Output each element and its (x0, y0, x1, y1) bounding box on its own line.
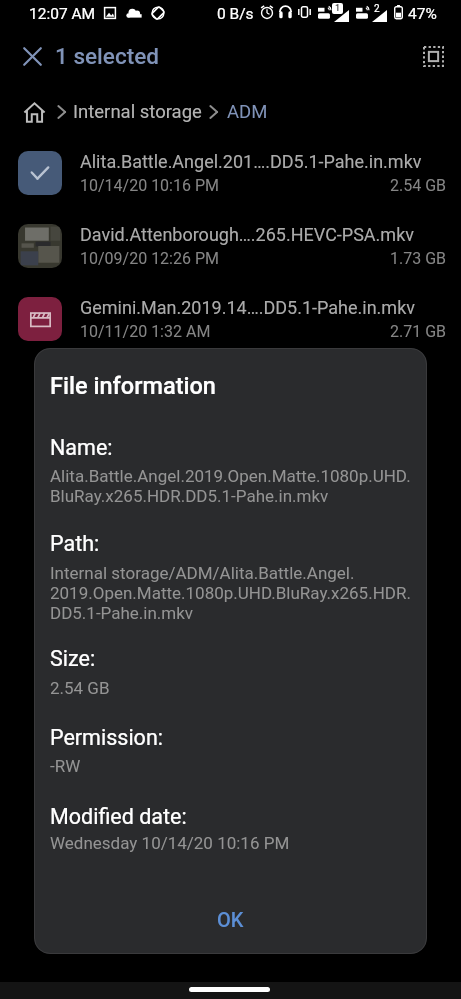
staticText: File information (50, 372, 216, 400)
staticText: Wednesday 10/14/20 10:16 PM (50, 833, 290, 853)
button[interactable]: Close (12, 36, 52, 76)
staticText: Alita.Battle.Angel.201….DD5.1-Pahe.in.mk… (80, 151, 422, 172)
staticText: 2.71 GB (390, 322, 447, 341)
staticText: Name: (50, 435, 113, 460)
staticText: Path: (50, 531, 100, 556)
staticText: 12:07 AM (29, 5, 96, 23)
staticText: 10/09/20 12:26 PM (80, 249, 219, 268)
staticText: 10/14/20 10:16 PM (80, 176, 219, 195)
staticText: Alita.Battle.Angel.2019.Open.Matte.1080p… (50, 466, 411, 506)
staticText: 1 (335, 3, 341, 14)
button[interactable]: Alita.Battle.Angel.201….DD5.1-Pahe.in.mk… (0, 136, 461, 209)
staticText: 1.73 GB (390, 249, 447, 268)
staticText: -RW (50, 756, 81, 776)
staticText: 2.54 GB (50, 678, 110, 698)
button[interactable]: Internal storage (73, 101, 202, 123)
staticText: Modified date: (50, 804, 187, 829)
staticText: Size: (50, 646, 96, 671)
button[interactable]: Gemini.Man.2019.14….DD5.1-Pahe.in.mkv (0, 282, 461, 355)
staticText: 47% (408, 5, 437, 23)
button[interactable]: OK (193, 900, 268, 939)
staticText: Permission: (50, 725, 163, 750)
staticText: 10/11/20 1:32 AM (80, 322, 211, 341)
staticText: 1 selected (55, 43, 159, 69)
staticText: OK (217, 908, 244, 931)
staticText: Gemini.Man.2019.14….DD5.1-Pahe.in.mkv (80, 297, 415, 318)
button[interactable]: Select all (413, 36, 453, 76)
button[interactable]: Home (20, 98, 48, 126)
staticText: 2.54 GB (390, 176, 447, 195)
staticText: 0 B/s (217, 5, 254, 23)
button[interactable]: ADM (227, 101, 268, 123)
staticText: 2 (374, 3, 380, 14)
button[interactable]: David.Attenborough….265.HEVC-PSA.mkv (0, 209, 461, 282)
staticText: Internal storage/ADM/Alita.Battle.Angel.… (50, 563, 411, 623)
staticText: David.Attenborough….265.HEVC-PSA.mkv (80, 224, 414, 245)
